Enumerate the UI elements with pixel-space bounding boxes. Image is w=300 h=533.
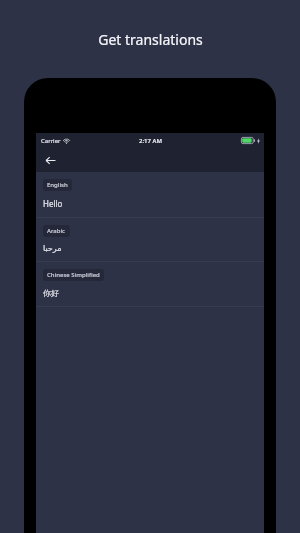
button[interactable]: English bbox=[36, 172, 264, 217]
staticText: Carrier bbox=[41, 137, 61, 145]
staticText: Hello bbox=[43, 198, 63, 209]
staticText: 2:17 AM bbox=[139, 137, 162, 145]
staticText: English bbox=[47, 181, 68, 189]
staticText: Chinese Simplified bbox=[47, 271, 100, 279]
staticText: Arabic bbox=[47, 227, 66, 235]
button[interactable]: Chinese Simplified bbox=[36, 262, 264, 306]
button[interactable]: Arabic bbox=[36, 218, 264, 261]
staticText: 你好 bbox=[43, 288, 59, 298]
staticText: Get translations bbox=[98, 30, 203, 49]
button[interactable]: Back bbox=[38, 148, 62, 172]
staticText: مرحبا bbox=[43, 244, 62, 253]
